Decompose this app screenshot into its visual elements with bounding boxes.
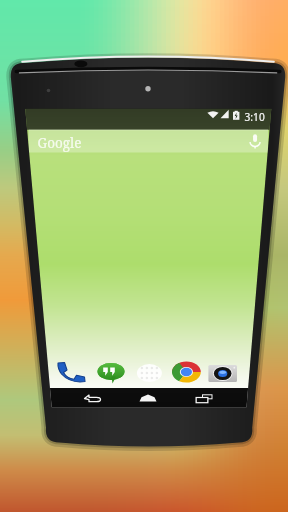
button[interactable]: Device preview bbox=[0, 0, 288, 512]
